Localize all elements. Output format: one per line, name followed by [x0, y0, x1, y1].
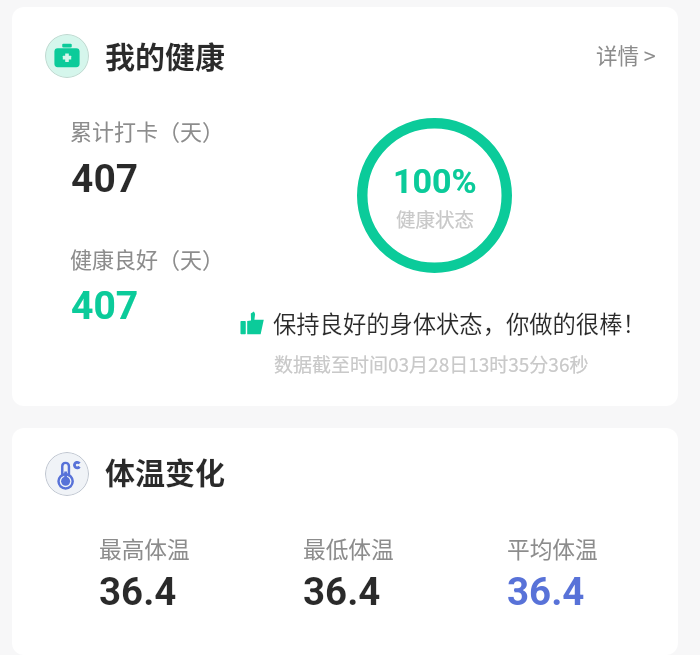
- staticText: 36.4: [303, 569, 381, 614]
- button[interactable]: 体温变化: [45, 446, 225, 502]
- staticText: 36.4: [507, 569, 585, 614]
- staticText: 407: [71, 156, 139, 202]
- staticText: 保持良好的身体状态，你做的很棒！: [273, 306, 646, 340]
- staticText: 数据截至时间03月28日13时35分36秒: [274, 350, 589, 378]
- button[interactable]: 我的健康: [45, 28, 225, 84]
- staticText: 407: [71, 283, 139, 329]
- staticText: 最高体温: [99, 532, 190, 565]
- staticText: 最低体温: [303, 532, 394, 565]
- button[interactable]: 详情 >: [588, 34, 664, 75]
- staticText: 平均体温: [507, 532, 598, 565]
- staticText: 详情 >: [596, 39, 656, 70]
- staticText: 体温变化: [105, 449, 225, 492]
- staticText: 100%: [393, 161, 477, 201]
- staticText: 健康状态: [396, 204, 475, 232]
- staticText: 36.4: [99, 569, 177, 614]
- staticText: 健康良好（天）: [70, 242, 225, 274]
- staticText: 累计打卡（天）: [70, 114, 225, 146]
- staticText: 我的健康: [105, 33, 225, 76]
